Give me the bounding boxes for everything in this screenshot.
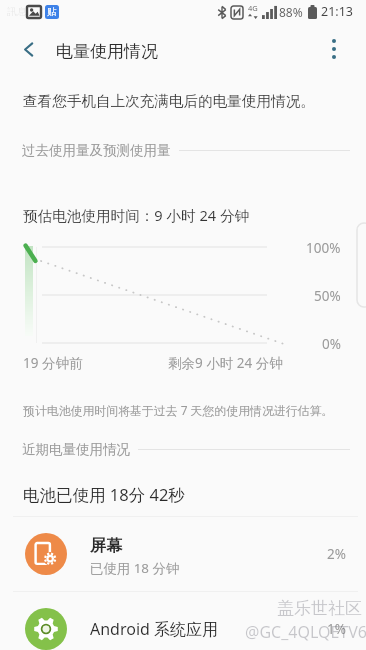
staticText: 21:13 (321, 3, 353, 20)
button[interactable]: 屏幕 (0, 516, 366, 591)
staticText: 88% (279, 4, 303, 20)
staticText: 4G (248, 3, 258, 13)
staticText: 电量使用情况 (56, 41, 158, 62)
staticText: 盖乐世社区 (277, 598, 362, 619)
staticText: 剩余9 小时 24 分钟 (168, 354, 283, 372)
staticText: 訊息 (7, 5, 27, 18)
staticText: 1% (327, 620, 346, 638)
button[interactable]: Back (6, 26, 50, 72)
staticText: 0% (322, 335, 341, 353)
staticText: 近期电量使用情况 (22, 441, 130, 458)
staticText: 贴 (47, 6, 57, 18)
staticText: 电池已使用 18分 42秒 (23, 483, 185, 506)
staticText: 查看您手机自上次充满电后的电量使用情况。 (23, 92, 315, 110)
staticText: 100% (306, 239, 341, 257)
staticText: 过去使用量及预测使用量 (22, 142, 171, 159)
button[interactable]: Android 系统应用 (0, 591, 366, 650)
button[interactable]: More options (312, 26, 356, 72)
staticText: 已使用 18 分钟 (90, 559, 180, 577)
staticText: 预估电池使用时间：9 小时 24 分钟 (23, 205, 250, 225)
staticText: 50% (314, 287, 341, 305)
staticText: 19 分钟前 (23, 354, 83, 372)
staticText: @GC_4QLQETV6 (245, 621, 366, 643)
staticText: Android 系统应用 (90, 618, 219, 640)
staticText: 预计电池使用时间将基于过去 7 天您的使用情况进行估算。 (23, 402, 334, 418)
staticText: 屏幕 (90, 536, 122, 556)
staticText: 2% (327, 545, 346, 563)
